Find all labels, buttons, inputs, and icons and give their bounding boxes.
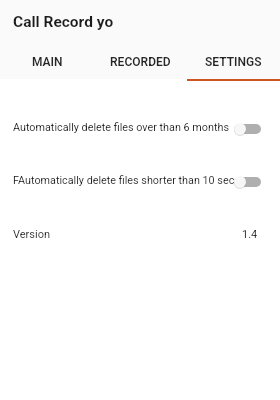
- staticText: Version: [13, 228, 51, 241]
- button[interactable]: Toggle Automatically delete files shorte…: [234, 170, 261, 190]
- staticText: FAutomatically delete files shorter than…: [13, 174, 235, 187]
- button[interactable]: SETTINGS: [187, 45, 280, 81]
- button[interactable]: MAIN: [0, 45, 94, 81]
- staticText: 1.4: [242, 228, 258, 241]
- staticText: Automatically delete files over than 6 m…: [13, 121, 229, 134]
- staticText: MAIN: [32, 55, 63, 69]
- staticText: Call Record yo: [13, 13, 114, 31]
- button[interactable]: Version: [0, 217, 280, 251]
- staticText: SETTINGS: [205, 55, 262, 69]
- button[interactable]: Automatically delete files shorter than …: [0, 157, 280, 203]
- button[interactable]: Automatically delete files over than 6 m…: [0, 104, 280, 150]
- button[interactable]: RECORDED: [94, 45, 187, 81]
- button[interactable]: Toggle Automatically delete files over t…: [234, 117, 261, 137]
- staticText: RECORDED: [110, 55, 171, 69]
